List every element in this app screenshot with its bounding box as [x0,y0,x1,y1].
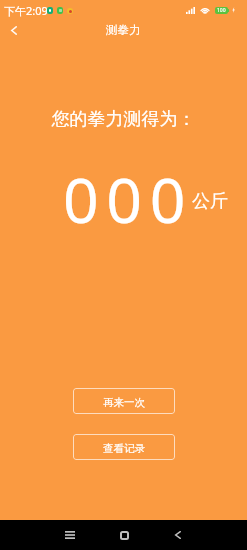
button[interactable]: Back [0,16,28,44]
staticText: 查看记录 [103,442,145,455]
button[interactable]: Back [160,520,196,550]
staticText: 测拳力 [106,23,141,37]
button[interactable]: Home [106,520,142,550]
staticText: 您的拳力测得为： [0,108,247,131]
staticText: 公斤 [192,190,228,213]
staticText: 100 [217,7,226,14]
staticText: 再来一次 [103,396,145,409]
button[interactable]: 再来一次 [73,388,175,414]
staticText: 000 [63,156,194,241]
button[interactable]: Recent apps [52,520,88,550]
staticText: 下午2:09 [4,3,48,18]
button[interactable]: 查看记录 [73,434,175,460]
